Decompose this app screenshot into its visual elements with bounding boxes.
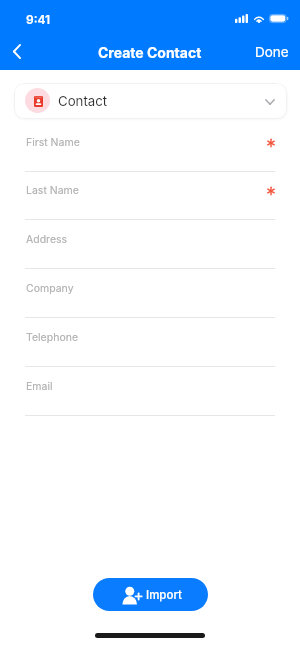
button[interactable]: Import [93,578,208,611]
button[interactable]: Company [25,269,275,318]
button[interactable]: Last Name [25,171,275,220]
staticText: Telephone [26,331,79,344]
staticText: Import [146,588,182,602]
staticText: Done [255,44,289,60]
staticText: Company [26,282,74,295]
button[interactable]: Back [0,34,34,68]
button[interactable]: Email [25,367,275,416]
staticText: 9:41 [26,12,51,27]
button[interactable]: Done [243,36,300,68]
staticText: Address [26,233,68,246]
staticText: Email [26,380,53,393]
button[interactable]: First Name [25,123,275,172]
staticText: Create Contact [98,44,202,61]
staticText: Last Name [26,184,79,197]
button[interactable]: Contact [14,83,287,119]
button[interactable]: Telephone [25,318,275,367]
button[interactable]: Address [25,220,275,269]
staticText: Contact [58,93,108,109]
staticText: First Name [26,136,80,149]
